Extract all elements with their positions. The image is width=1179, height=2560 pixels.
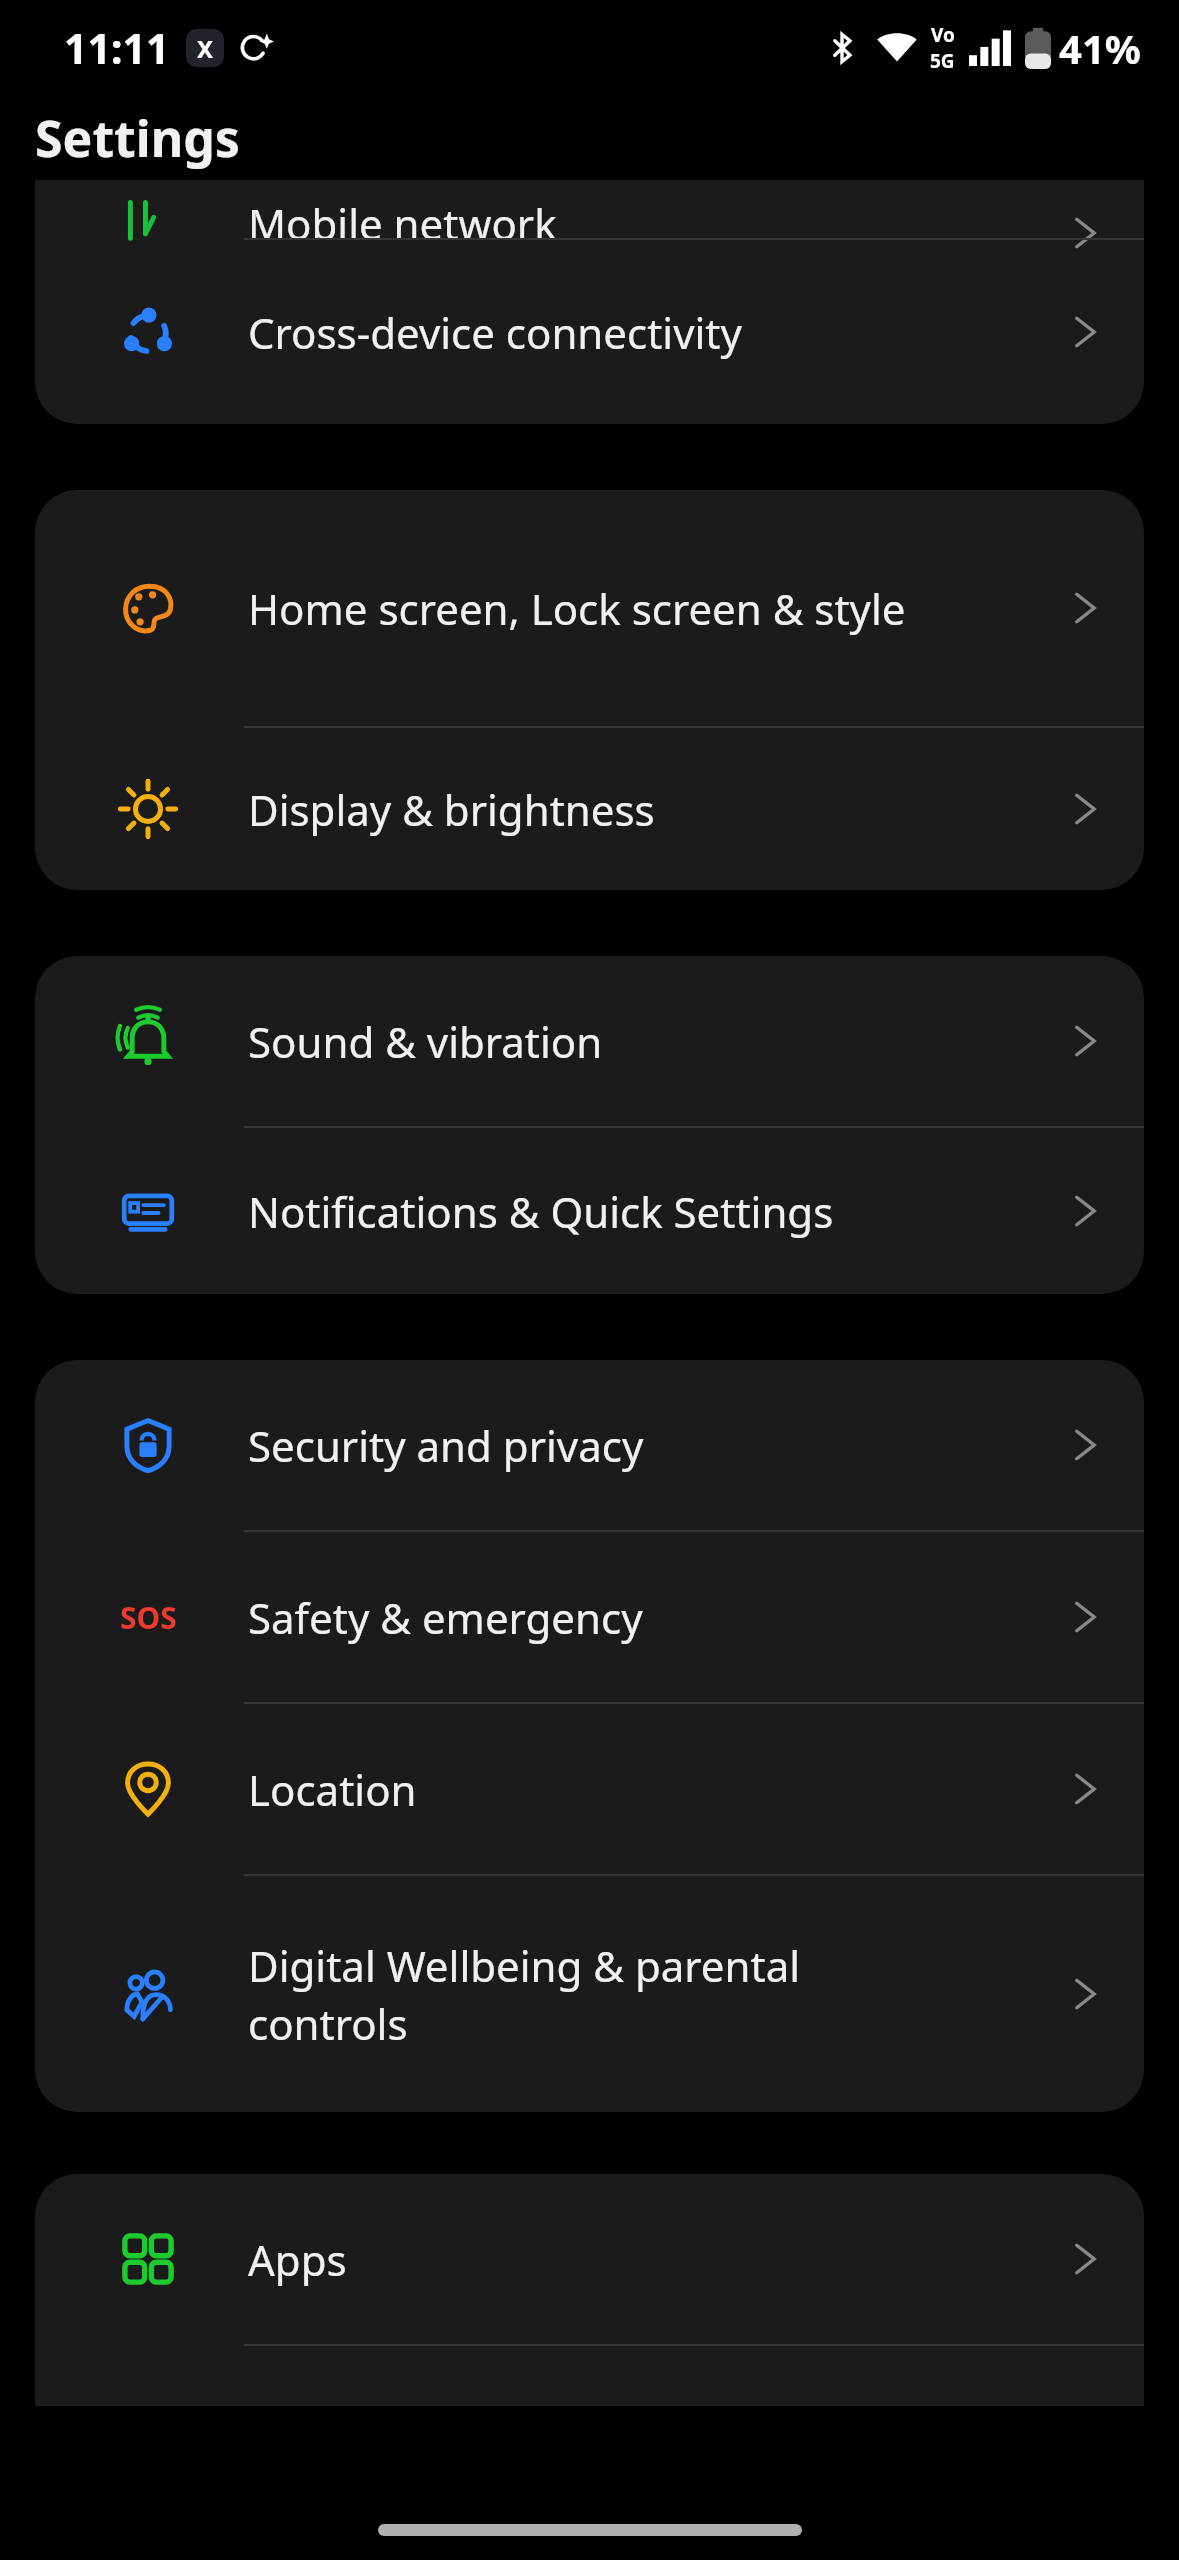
- other: Cross-device connectivity: [1062, 309, 1108, 355]
- other: Mobile network: [1062, 210, 1108, 256]
- staticText: Display & brightness: [248, 781, 655, 838]
- staticText: Safety & emergency: [248, 1589, 643, 1646]
- staticText: Location: [248, 1761, 417, 1818]
- other: Sound & vibration: [1062, 1018, 1108, 1064]
- staticText: SOS: [120, 1597, 177, 1638]
- staticText: Cross-device connectivity: [248, 304, 742, 361]
- other: Home screen, Lock screen & style: [1062, 585, 1108, 631]
- staticText: Settings: [35, 104, 240, 172]
- button[interactable]: Home screen, Lock screen & style: [35, 490, 1144, 726]
- staticText: Home screen, Lock screen & style: [248, 580, 906, 637]
- staticText: Security and privacy: [248, 1417, 644, 1474]
- other: Safety & emergency: [1062, 1594, 1108, 1640]
- staticText: X: [197, 32, 214, 65]
- other: Location: [1062, 1766, 1108, 1812]
- button[interactable]: Cross-device connectivity: [35, 240, 1144, 424]
- staticText: Notifications & Quick Settings: [248, 1183, 834, 1240]
- other: Display & brightness: [1062, 786, 1108, 832]
- button[interactable]: Apps: [35, 2174, 1144, 2344]
- other: Security and privacy: [1062, 1422, 1108, 1468]
- staticText: Apps: [248, 2231, 347, 2288]
- button[interactable]: SOS: [35, 1532, 1144, 1702]
- button[interactable]: Digital Wellbeing & parental controls: [35, 1876, 1144, 2112]
- button[interactable]: Display & brightness: [35, 728, 1144, 890]
- button[interactable]: Notifications & Quick Settings: [35, 1128, 1144, 1294]
- other: Notifications & Quick Settings: [1062, 1188, 1108, 1234]
- button[interactable]: Location: [35, 1704, 1144, 1874]
- staticText: Vo: [931, 22, 955, 48]
- button[interactable]: Sound & vibration: [35, 956, 1144, 1126]
- button[interactable]: Security and privacy: [35, 1360, 1144, 1530]
- other: Apps: [1062, 2236, 1108, 2282]
- other: Digital Wellbeing & parental controls: [1062, 1971, 1108, 2017]
- staticText: 5G: [930, 48, 955, 74]
- staticText: Mobile network: [248, 195, 557, 252]
- staticText: 41%: [1059, 21, 1141, 75]
- staticText: Sound & vibration: [248, 1013, 603, 1070]
- staticText: Digital Wellbeing & parental controls: [248, 1937, 948, 2052]
- button[interactable]: Mobile network: [35, 180, 1144, 238]
- staticText: 11:11: [64, 20, 170, 76]
